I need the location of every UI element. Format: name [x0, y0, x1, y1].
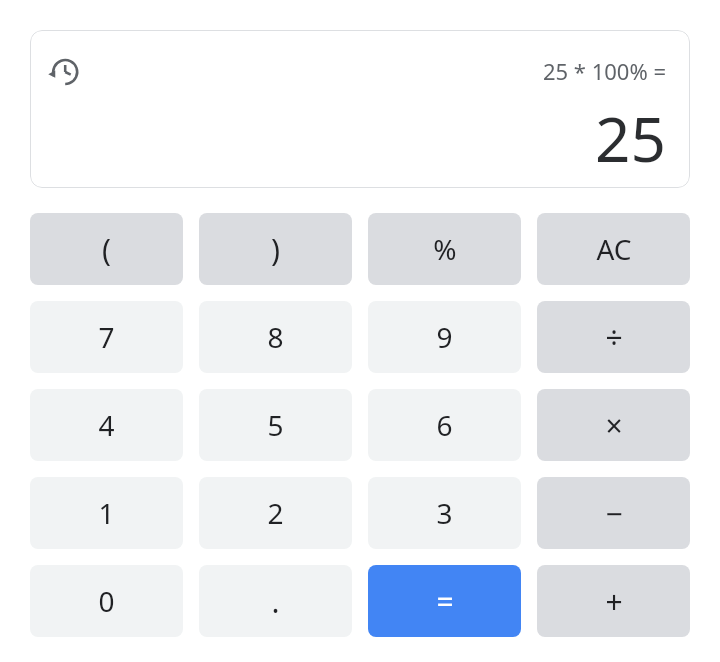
button[interactable]: 6 — [368, 389, 521, 461]
staticText: + — [605, 581, 623, 622]
staticText: 5 — [267, 406, 284, 444]
staticText: = — [436, 581, 454, 622]
button[interactable]: AC — [537, 213, 690, 285]
button[interactable]: − — [537, 477, 690, 549]
staticText: AC — [596, 230, 632, 268]
staticText: % — [433, 230, 457, 268]
button[interactable]: + — [537, 565, 690, 637]
button[interactable]: 7 — [30, 301, 183, 373]
staticText: 25 — [595, 96, 666, 180]
button[interactable]: 2 — [199, 477, 352, 549]
button[interactable]: History — [42, 50, 86, 94]
staticText: 4 — [98, 406, 115, 444]
staticText: 1 — [98, 494, 115, 532]
button[interactable]: 9 — [368, 301, 521, 373]
button[interactable]: History — [30, 30, 690, 188]
button[interactable]: 3 — [368, 477, 521, 549]
staticText: 6 — [436, 406, 453, 444]
button[interactable]: . — [199, 565, 352, 637]
staticText: ÷ — [605, 317, 623, 358]
button[interactable]: 8 — [199, 301, 352, 373]
staticText: ) — [271, 229, 280, 270]
button[interactable]: 0 — [30, 565, 183, 637]
staticText: 25 * 100% = — [542, 56, 666, 86]
staticText: 8 — [267, 318, 284, 356]
button[interactable]: × — [537, 389, 690, 461]
button[interactable]: 5 — [199, 389, 352, 461]
button[interactable]: ( — [30, 213, 183, 285]
button[interactable]: 4 — [30, 389, 183, 461]
button[interactable]: ) — [199, 213, 352, 285]
staticText: ( — [102, 229, 111, 270]
staticText: − — [605, 493, 623, 534]
staticText: × — [605, 405, 623, 446]
button[interactable]: 1 — [30, 477, 183, 549]
button[interactable]: % — [368, 213, 521, 285]
button[interactable]: = — [368, 565, 521, 637]
staticText: 2 — [267, 494, 284, 532]
staticText: 7 — [98, 318, 115, 356]
staticText: 9 — [436, 318, 453, 356]
button[interactable]: ÷ — [537, 301, 690, 373]
staticText: 0 — [98, 582, 115, 620]
staticText: . — [271, 581, 280, 622]
staticText: 3 — [436, 494, 453, 532]
